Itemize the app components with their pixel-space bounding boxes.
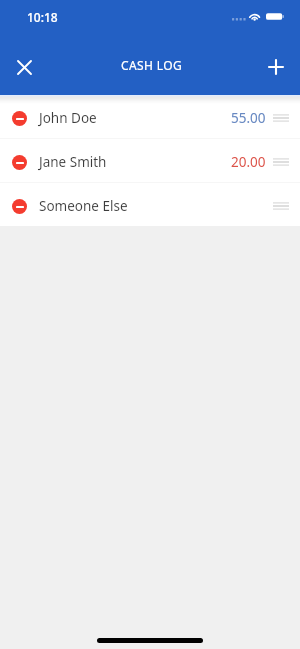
button[interactable]: Remove Jane Smith: [0, 139, 300, 182]
button[interactable]: Remove John Doe: [12, 111, 27, 126]
staticText: CASH LOG: [121, 57, 183, 73]
button[interactable]: Reorder John Doe: [273, 114, 289, 122]
staticText: John Doe: [39, 109, 97, 127]
staticText: Jane Smith: [39, 153, 107, 171]
staticText: Someone Else: [39, 197, 128, 215]
button[interactable]: Remove Someone Else: [12, 199, 27, 214]
button[interactable]: Add: [252, 43, 300, 91]
button[interactable]: Remove Jane Smith: [12, 155, 27, 170]
button[interactable]: Reorder Jane Smith: [273, 158, 289, 166]
button[interactable]: Reorder Someone Else: [273, 202, 289, 210]
staticText: 55.00: [231, 109, 266, 127]
button[interactable]: Remove Someone Else: [0, 183, 300, 226]
staticText: 20.00: [231, 153, 266, 171]
button[interactable]: Close: [2, 45, 46, 89]
button[interactable]: Remove John Doe: [0, 95, 300, 138]
staticText: 10:18: [27, 9, 58, 25]
